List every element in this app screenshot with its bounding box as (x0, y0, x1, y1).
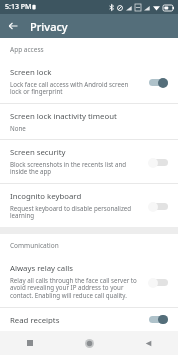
button[interactable]: Screen lock (0, 60, 178, 103)
staticText: Lock face call access with Android scree… (10, 80, 140, 96)
button[interactable]: Read receipts (0, 308, 178, 331)
staticText: Privacy (30, 19, 68, 34)
button[interactable]: Toggle on (146, 75, 170, 89)
staticText: App access (10, 45, 44, 54)
button[interactable]: Recent apps (0, 331, 60, 355)
staticText: 5:13 PM (5, 2, 32, 12)
button[interactable]: Incognito keyboard (0, 184, 178, 227)
staticText: Always relay calls (10, 263, 73, 274)
staticText: Block screenshots in the recents list an… (10, 160, 140, 176)
button[interactable]: Back (119, 331, 178, 355)
button[interactable]: Toggle off (146, 275, 170, 289)
button[interactable]: Home (60, 331, 119, 355)
button[interactable]: Screen security (0, 140, 178, 183)
button[interactable]: Always relay calls (0, 256, 178, 307)
staticText: None (10, 124, 26, 132)
button[interactable]: Toggle off (146, 199, 170, 213)
button[interactable]: Back (3, 16, 23, 36)
staticText: Screen lock inactivity timeout (10, 111, 117, 122)
staticText: Screen lock (10, 67, 52, 78)
staticText: Communication (10, 241, 59, 250)
staticText: Relay all calls through the face call se… (10, 276, 140, 300)
staticText: Incognito keyboard (10, 191, 82, 202)
staticText: Request keyboard to disable personalized… (10, 204, 140, 220)
button[interactable]: Toggle off (146, 155, 170, 169)
staticText: Screen security (10, 147, 66, 158)
button[interactable]: Toggle on (146, 315, 170, 324)
button[interactable]: Screen lock inactivity timeout (0, 104, 178, 139)
staticText: Read receipts (10, 315, 60, 324)
